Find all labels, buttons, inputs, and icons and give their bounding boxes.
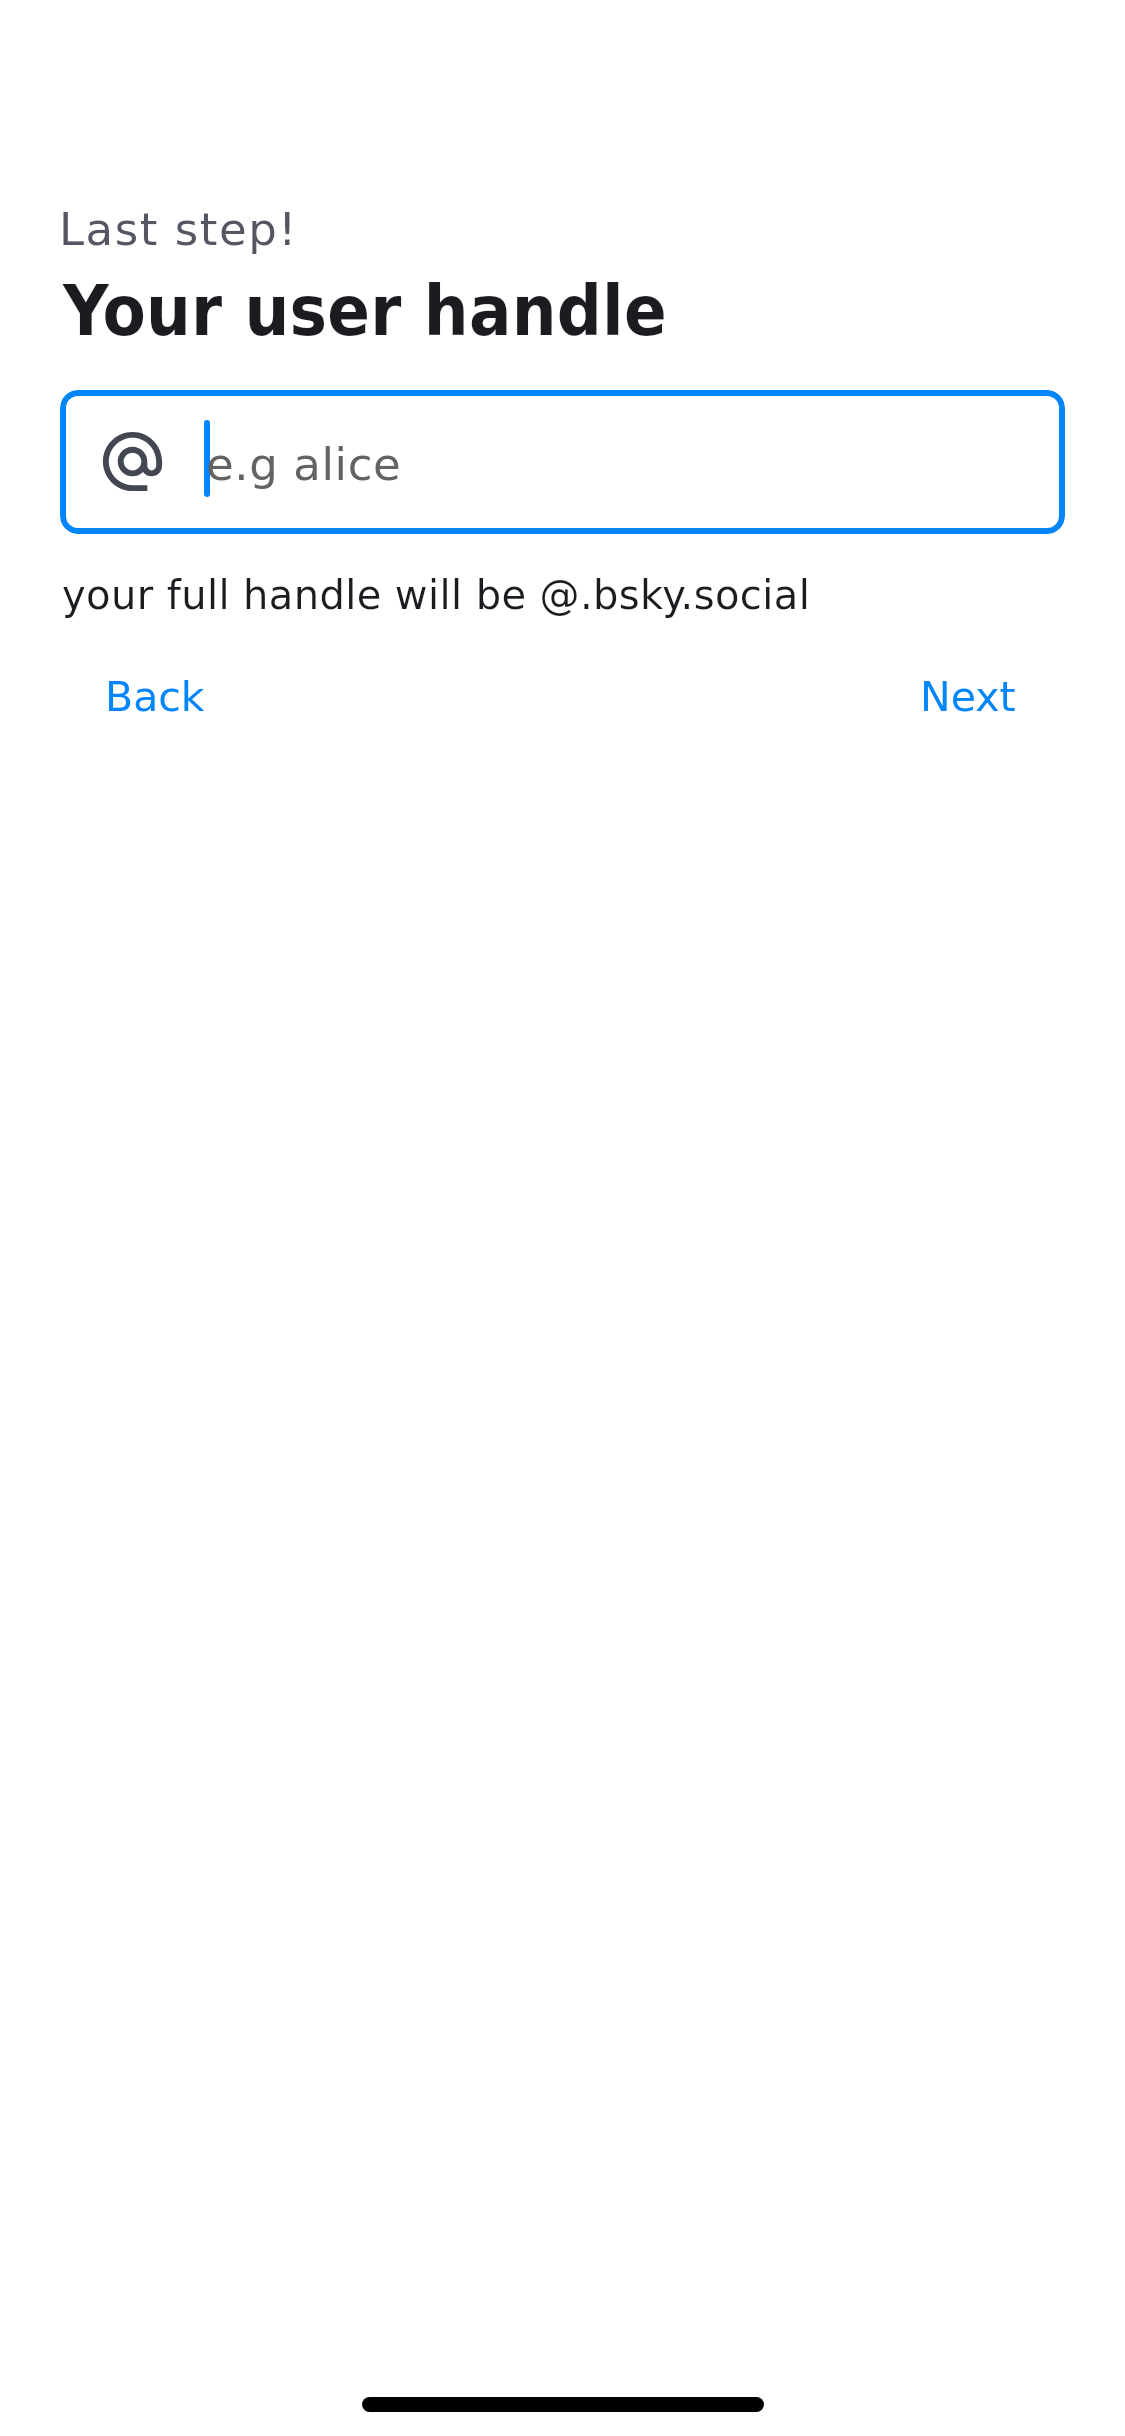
button[interactable]: At sign: [60, 390, 1065, 534]
staticText: Back: [105, 673, 205, 721]
staticText: e.g alice: [206, 438, 402, 490]
button[interactable]: Back: [60, 655, 250, 739]
other: At sign: [97, 426, 168, 497]
staticText: Next: [920, 673, 1016, 721]
button[interactable]: Next: [879, 655, 1065, 739]
staticText: Last step!: [59, 203, 298, 255]
staticText: Your user handle: [63, 270, 667, 351]
staticText: your full handle will be @.bsky.social: [62, 572, 811, 619]
